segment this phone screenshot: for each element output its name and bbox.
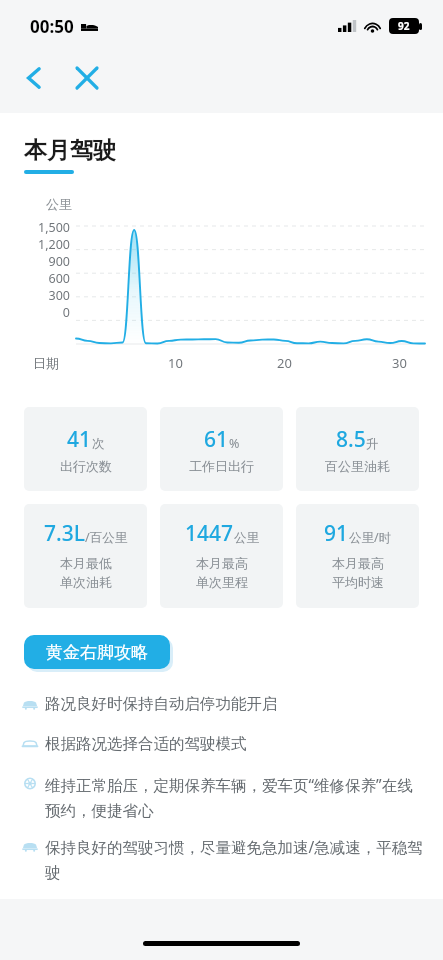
staticText: 维持正常胎压，定期保养车辆，爱车页“维修保养”在线预约，便捷省心 xyxy=(45,774,423,820)
staticText: 10 xyxy=(168,354,183,372)
staticText: 根据路况选择合适的驾驶模式 xyxy=(45,734,247,754)
staticText: 0 xyxy=(10,304,70,321)
staticText: 路况良好时保持自动启停功能开启 xyxy=(45,694,278,714)
staticText: 91 xyxy=(324,519,349,548)
staticText: 公里 xyxy=(46,196,72,212)
button[interactable]: 1447 xyxy=(160,504,283,608)
staticText: 保持良好的驾驶习惯，尽量避免急加速/急减速，平稳驾驶 xyxy=(45,836,423,882)
staticText: /百公里 xyxy=(85,529,128,546)
button[interactable]: Close xyxy=(66,57,108,99)
staticText: 900 xyxy=(10,253,70,270)
staticText: 公里/时 xyxy=(349,529,392,546)
staticText: 百公里油耗 xyxy=(325,458,390,474)
staticText: 92 xyxy=(398,19,410,33)
staticText: 600 xyxy=(10,270,70,287)
staticText: 1,200 xyxy=(10,236,70,253)
staticText: 次 xyxy=(92,436,105,452)
staticText: 本月最高 xyxy=(196,555,248,571)
staticText: 30 xyxy=(392,354,407,372)
staticText: % xyxy=(229,435,240,452)
staticText: 平均时速 xyxy=(332,574,384,590)
staticText: 7.3L xyxy=(44,519,85,548)
staticText: 61 xyxy=(204,425,229,454)
button[interactable]: 黄金右脚攻略 xyxy=(24,635,170,669)
staticText: 公里 xyxy=(234,530,259,546)
staticText: 单次油耗 xyxy=(60,574,112,590)
staticText: 20 xyxy=(277,354,292,372)
staticText: 工作日出行 xyxy=(189,458,254,474)
button[interactable]: 7.3L xyxy=(24,504,147,608)
staticText: 本月最高 xyxy=(332,555,384,571)
button[interactable]: 61 xyxy=(160,407,283,491)
staticText: 300 xyxy=(10,287,70,304)
staticText: 黄金右脚攻略 xyxy=(46,642,148,663)
staticText: 单次里程 xyxy=(196,574,248,590)
staticText: 8.5 xyxy=(336,425,366,454)
staticText: 本月最低 xyxy=(60,555,112,571)
staticText: 1447 xyxy=(185,519,234,548)
button[interactable]: Back xyxy=(14,58,54,98)
staticText: 1,500 xyxy=(10,219,70,236)
staticText: 本月驾驶 xyxy=(24,136,116,165)
button[interactable]: 91 xyxy=(296,504,419,608)
staticText: 41 xyxy=(67,425,92,454)
staticText: 日期 xyxy=(33,355,59,371)
button[interactable]: 8.5 xyxy=(296,407,419,491)
staticText: 出行次数 xyxy=(60,458,112,474)
staticText: 升 xyxy=(366,436,379,452)
staticText: 00:50 xyxy=(30,15,74,38)
button[interactable]: 41 xyxy=(24,407,147,491)
